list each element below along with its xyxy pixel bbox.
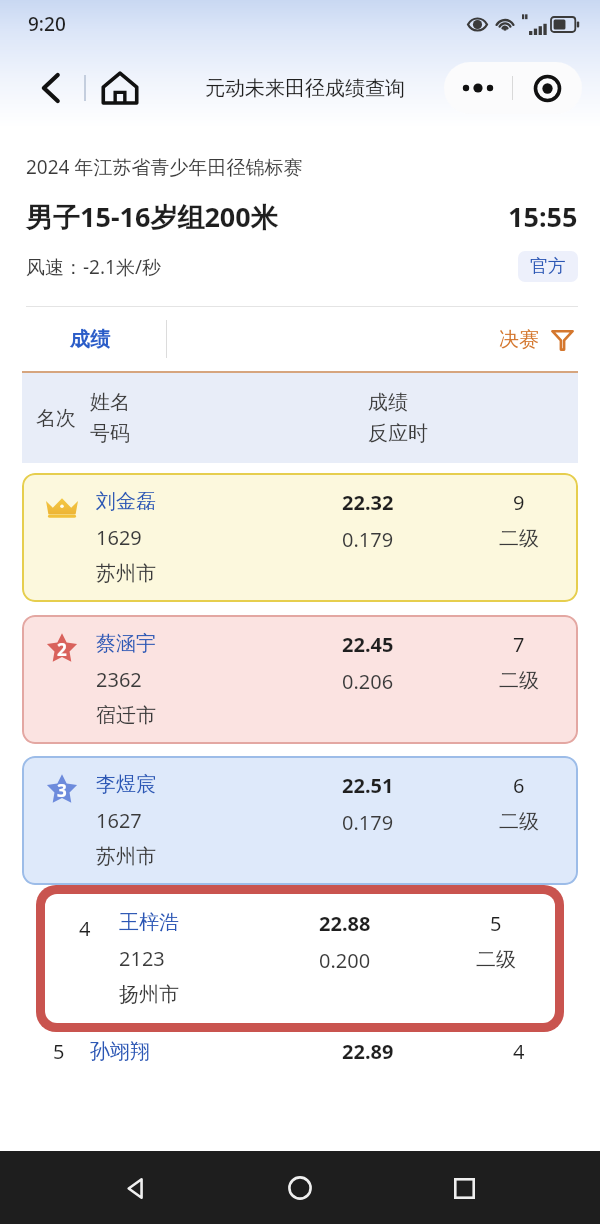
button[interactable]: 2 (22, 615, 578, 744)
staticText: 0.206 (342, 668, 394, 695)
staticText: 王梓浩 (119, 910, 179, 935)
staticText: 0.179 (342, 809, 394, 836)
staticText: 风速：-2.1米/秒 (26, 254, 518, 280)
staticText: 2024 年江苏省青少年田径锦标赛 (26, 154, 303, 180)
staticText: 二级 (499, 809, 539, 834)
staticText: 2362 (96, 666, 142, 693)
button[interactable]: 4 (36, 885, 564, 1032)
button[interactable]: Back (30, 67, 72, 109)
staticText: 苏州市 (96, 844, 156, 869)
staticText: 2 (57, 638, 67, 661)
staticText: 二级 (476, 947, 516, 972)
staticText: 2123 (119, 945, 165, 972)
staticText: 22.51 (342, 772, 394, 799)
staticText: 成绩 (368, 390, 408, 415)
staticText: 5 (53, 1038, 65, 1065)
staticText: 0.200 (319, 947, 371, 974)
staticText: 9:20 (28, 11, 66, 37)
staticText: 5 (490, 910, 502, 937)
staticText: 6 (513, 772, 525, 799)
staticText: 成绩 (70, 327, 110, 352)
staticText: 1627 (96, 807, 142, 834)
staticText: 苏州市 (96, 561, 156, 586)
staticText: 22.88 (319, 910, 371, 937)
button[interactable]: 决赛 (495, 321, 578, 358)
staticText: 二级 (499, 668, 539, 693)
button[interactable]: More (444, 62, 512, 114)
staticText: 22.32 (342, 489, 394, 516)
staticText: 扬州市 (119, 982, 179, 1007)
staticText: 决赛 (499, 327, 539, 352)
staticText: 7 (513, 631, 525, 658)
staticText: 蔡涵宇 (96, 631, 156, 656)
staticText: 官方 (530, 255, 566, 278)
staticText: 3 (57, 779, 67, 802)
staticText: 二级 (499, 526, 539, 551)
staticText: 0.179 (342, 526, 394, 553)
staticText: 号码 (90, 421, 130, 446)
staticText: 姓名 (90, 390, 130, 415)
button[interactable]: Back (108, 1160, 164, 1216)
button[interactable]: Close (513, 62, 582, 114)
staticText: 15:55 (508, 198, 578, 235)
button[interactable]: Recents (436, 1160, 492, 1216)
staticText: 9 (513, 489, 525, 516)
staticText: 4 (513, 1038, 525, 1065)
staticText: 刘金磊 (96, 489, 156, 514)
staticText: 元动未来田径成绩查询 (205, 76, 405, 101)
button[interactable]: 官方 (530, 255, 566, 278)
staticText: 22.89 (342, 1038, 394, 1065)
button[interactable]: 5 (28, 1038, 578, 1065)
staticText: 名次 (36, 406, 76, 431)
staticText: 4 (79, 915, 91, 942)
staticText: 男子15-16岁组200米 (26, 198, 508, 235)
button[interactable]: Home (98, 66, 142, 110)
staticText: 1629 (96, 524, 142, 551)
button[interactable]: 成绩 (64, 321, 116, 358)
staticText: 孙翊翔 (90, 1039, 342, 1064)
button[interactable]: 3 (22, 756, 578, 885)
button[interactable]: Home (272, 1160, 328, 1216)
staticText: 李煜宸 (96, 772, 156, 797)
staticText: 宿迁市 (96, 703, 156, 728)
button[interactable]: 刘金磊 (22, 473, 578, 602)
staticText: 22.45 (342, 631, 394, 658)
staticText: 反应时 (368, 421, 428, 446)
